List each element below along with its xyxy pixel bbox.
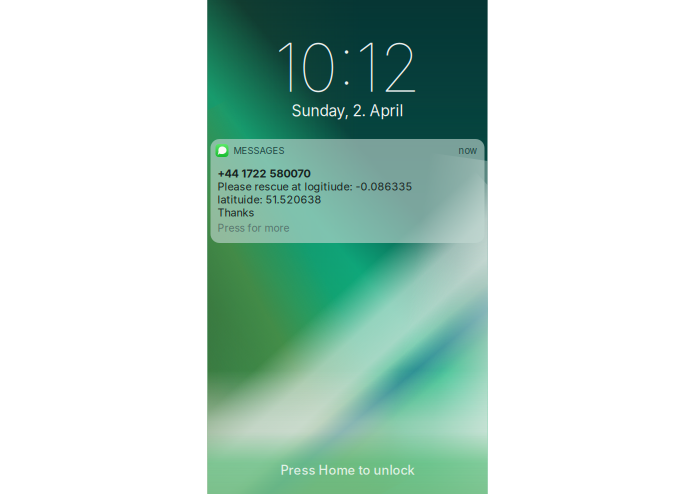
staticText: MESSAGES	[233, 145, 284, 156]
staticText: Thanks	[217, 206, 254, 219]
staticText: latituide: 51.520638	[217, 193, 321, 206]
staticText: Please rescue at logitiude: -0.086335	[217, 180, 412, 193]
staticText: Sunday, 2. April	[291, 101, 403, 120]
button[interactable]: Press Home to unlock	[207, 462, 487, 478]
staticText: Press Home to unlock	[280, 462, 414, 478]
staticText: +44 1722 580070	[217, 167, 310, 180]
staticText: Press for more	[217, 222, 289, 234]
button[interactable]: MESSAGES	[210, 139, 484, 243]
staticText: 10:12	[274, 27, 420, 108]
staticText: now	[458, 145, 477, 156]
